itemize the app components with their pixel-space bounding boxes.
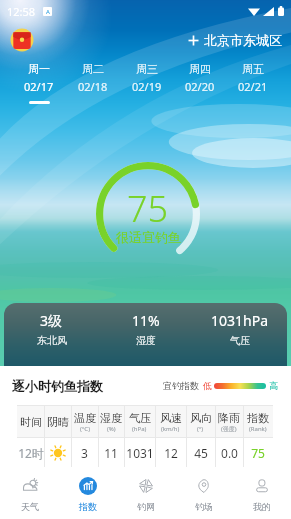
staticText: (°C) [80,425,90,433]
staticText: 钓场 [195,501,213,512]
staticText: 75 [127,184,169,233]
button[interactable]: 天气 [0,467,59,519]
staticText: 12时 [18,445,44,461]
staticText: 0.0 [221,445,238,461]
staticText: 02/18 [78,79,108,94]
staticText: 天气 [21,501,39,512]
staticText: 很适宜钓鱼 [116,229,181,245]
staticText: 3级 [40,311,63,330]
button[interactable]: 钓网 [117,467,175,519]
staticText: (hPa) [132,425,147,433]
staticText: 1031 [126,445,154,461]
button[interactable]: 周一 [12,58,66,108]
staticText: 周一 [28,62,50,76]
staticText: 时间 [20,415,42,429]
staticText: (强度) [221,425,237,433]
button[interactable]: 周四 [173,58,226,108]
staticText: A [46,8,50,16]
staticText: 北京市东城区 [204,32,282,48]
staticText: 风向 [190,411,212,425]
staticText: 指数 [247,411,269,425]
staticText: 温度 [74,411,96,425]
staticText: 宜钓指数 [163,380,199,391]
staticText: 钓网 [137,501,155,512]
staticText: 周五 [242,62,264,76]
staticText: 湿度 [136,334,156,346]
button[interactable]: 我的 [233,467,291,519]
button[interactable]: 钓场 [175,467,233,519]
staticText: 指数 [79,501,97,512]
staticText: 75 [251,445,265,461]
button[interactable]: 周二 [66,58,120,108]
staticText: 降雨 [218,411,240,425]
staticText: 11% [132,311,160,330]
button[interactable]: Red packet [8,26,36,54]
staticText: 1031hPa [211,311,269,330]
staticText: (km/h) [161,425,180,433]
staticText: (°) [197,425,204,433]
staticText: 周四 [189,62,211,76]
staticText: 45 [194,445,208,461]
staticText: 气压 [230,334,250,346]
staticText: 02/20 [185,79,215,94]
staticText: 高 [269,380,278,391]
button[interactable]: 指数 [59,467,117,519]
staticText: 12:58 [7,4,36,19]
button[interactable]: 周三 [120,58,173,108]
staticText: (Rank) [249,425,267,433]
staticText: 风速 [160,411,182,425]
staticText: 湿度 [100,411,122,425]
staticText: 逐小时钓鱼指数 [12,378,103,394]
staticText: 02/19 [132,79,162,94]
button[interactable]: 北京市东城区 [188,32,282,48]
staticText: 12 [164,445,178,461]
staticText: 气压 [129,411,151,425]
staticText: 我的 [253,501,271,512]
staticText: 02/17 [24,79,54,94]
staticText: 低 [203,380,212,391]
staticText: 东北风 [37,334,67,346]
staticText: 11 [104,445,118,461]
staticText: (%) [107,425,116,433]
staticText: 3 [81,445,88,461]
staticText: 02/21 [238,79,268,94]
staticText: 阴晴 [47,415,69,429]
staticText: 周二 [82,62,104,76]
staticText: 周三 [136,62,158,76]
button[interactable]: 周五 [226,58,279,108]
